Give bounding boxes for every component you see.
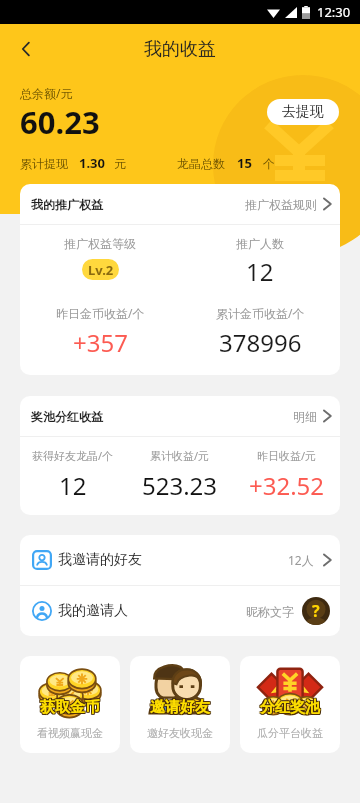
staticText: 推广人数 xyxy=(236,236,284,251)
staticText: 获取金币 xyxy=(40,698,100,717)
staticText: 明细 xyxy=(293,409,317,424)
staticText: 昵称文字 xyxy=(246,604,294,619)
staticText: 邀请好友 xyxy=(150,699,210,718)
staticText: 获取金币 xyxy=(41,697,101,716)
staticText: 12 xyxy=(246,255,274,288)
staticText: 获取金币 xyxy=(41,699,101,718)
button[interactable]: 去提现 xyxy=(267,99,339,125)
staticText: ? xyxy=(312,600,320,622)
staticText: 12 xyxy=(59,469,87,502)
staticText: 分红奖池 xyxy=(260,697,320,716)
staticText: 获得好友龙晶/个 xyxy=(32,448,114,463)
button[interactable]: 邀请好友 xyxy=(130,656,230,753)
staticText: Lv.2 xyxy=(88,261,114,279)
button[interactable]: 获取金币 xyxy=(20,656,120,753)
staticText: 1.30 xyxy=(79,154,105,172)
staticText: 去提现 xyxy=(282,103,324,121)
staticText: 邀请好友 xyxy=(151,697,211,716)
staticText: 获取金币 xyxy=(40,697,100,716)
button[interactable]: Back xyxy=(6,29,46,69)
staticText: 分红奖池 xyxy=(260,698,320,717)
staticText: 60.23 xyxy=(20,101,100,143)
staticText: +32.52 xyxy=(249,469,325,502)
button[interactable]: 我的邀请人 xyxy=(20,586,340,636)
staticText: 看视频赢现金 xyxy=(37,726,103,740)
staticText: 523.23 xyxy=(142,469,218,502)
button[interactable]: 帮助 xyxy=(302,597,330,625)
staticText: 累计金币收益/个 xyxy=(216,305,305,321)
staticText: 获取金币 xyxy=(39,698,99,717)
staticText: 分红奖池 xyxy=(261,697,321,716)
staticText: 邀请好友 xyxy=(149,699,209,718)
staticText: 元 xyxy=(114,156,126,171)
button[interactable]: 奖池分红收益 xyxy=(20,396,340,436)
staticText: 邀请好友 xyxy=(151,698,211,717)
staticText: 分红奖池 xyxy=(259,698,319,717)
staticText: 总余额/元 xyxy=(20,85,73,101)
staticText: 瓜分平台收益 xyxy=(257,726,323,740)
staticText: 推广权益规则 xyxy=(245,197,317,212)
staticText: 分红奖池 xyxy=(261,699,321,718)
staticText: 378996 xyxy=(219,326,302,359)
staticText: 龙晶总数 xyxy=(177,156,225,171)
staticText: 奖池分红收益 xyxy=(31,409,103,424)
staticText: 分红奖池 xyxy=(260,699,320,718)
staticText: 我的邀请人 xyxy=(58,602,128,620)
staticText: 累计收益/元 xyxy=(150,448,210,463)
staticText: 邀请好友 xyxy=(149,698,209,717)
staticText: 获取金币 xyxy=(41,698,101,717)
button[interactable]: 我邀请的好友 xyxy=(20,535,340,585)
staticText: 邀请好友 xyxy=(151,699,211,718)
staticText: 我邀请的好友 xyxy=(58,551,142,569)
staticText: 个 xyxy=(263,156,275,171)
staticText: 获取金币 xyxy=(40,699,100,718)
staticText: 昨日金币收益/个 xyxy=(56,305,145,321)
staticText: 分红奖池 xyxy=(261,698,321,717)
staticText: 12人 xyxy=(288,552,314,568)
staticText: 分红奖池 xyxy=(259,697,319,716)
staticText: 邀好友收现金 xyxy=(147,726,213,740)
staticText: 邀请好友 xyxy=(150,697,210,716)
staticText: +357 xyxy=(73,326,128,359)
staticText: 15 xyxy=(237,154,252,172)
staticText: 分红奖池 xyxy=(259,699,319,718)
staticText: 邀请好友 xyxy=(150,698,210,717)
staticText: 推广权益等级 xyxy=(64,236,136,251)
staticText: 12:30 xyxy=(317,3,351,21)
staticText: 获取金币 xyxy=(39,697,99,716)
button[interactable]: 我的推广权益 xyxy=(20,184,340,224)
staticText: 邀请好友 xyxy=(149,697,209,716)
staticText: 昨日收益/元 xyxy=(257,448,317,463)
staticText: 获取金币 xyxy=(39,699,99,718)
staticText: 我的推广权益 xyxy=(31,197,103,212)
staticText: 累计提现 xyxy=(20,156,68,171)
staticText: 我的收益 xyxy=(144,38,216,61)
button[interactable]: 分红奖池 xyxy=(240,656,340,753)
